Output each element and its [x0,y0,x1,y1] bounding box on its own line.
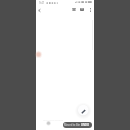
staticText: UNDO [81,123,90,127]
staticText: and more people [43,118,64,121]
button[interactable]: Archive [70,6,77,13]
button[interactable]: Moved to Bin [63,122,92,128]
button[interactable]: Mark unread [78,6,85,13]
button[interactable]: More options [87,7,93,13]
button[interactable]: Back [35,6,43,14]
button[interactable]: Compose [78,105,89,116]
staticText: 9:41 [39,1,45,4]
staticText: Moved to Bin [64,123,81,127]
